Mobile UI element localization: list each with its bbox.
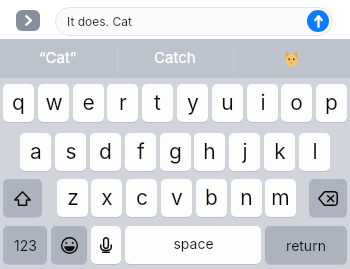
button[interactable]: r — [107, 84, 138, 122]
button[interactable]: It does. Cat — [55, 7, 333, 36]
staticText: p — [325, 90, 338, 115]
button[interactable]: p — [316, 84, 347, 122]
staticText: i — [260, 90, 266, 115]
button[interactable]: w — [38, 84, 69, 122]
button[interactable]: space — [125, 226, 261, 264]
button[interactable]: Shift — [3, 179, 42, 217]
staticText: e — [82, 90, 95, 115]
staticText: h — [203, 139, 216, 164]
staticText: u — [221, 90, 234, 115]
staticText: f — [137, 139, 145, 164]
staticText: k — [274, 139, 286, 164]
staticText: z — [67, 185, 79, 210]
button[interactable]: u — [212, 84, 243, 122]
staticText: d — [99, 139, 112, 164]
button[interactable]: t — [142, 84, 173, 122]
staticText: w — [45, 90, 63, 115]
button[interactable]: b — [196, 179, 227, 217]
button[interactable]: j — [229, 133, 260, 171]
staticText: v — [171, 185, 183, 210]
staticText: 123 — [14, 237, 37, 254]
staticText: l — [312, 139, 318, 164]
staticText: m — [271, 185, 290, 210]
staticText: y — [187, 90, 199, 115]
staticText: c — [136, 185, 148, 210]
staticText: return — [286, 237, 326, 254]
button[interactable]: y — [177, 84, 208, 122]
button[interactable]: m — [265, 179, 296, 217]
button[interactable]: i — [247, 84, 278, 122]
button[interactable]: Cat emoji suggestion — [233, 39, 350, 78]
staticText: r — [119, 90, 127, 115]
staticText: n — [240, 185, 253, 210]
staticText: Catch — [154, 48, 196, 66]
button[interactable]: c — [126, 179, 157, 217]
button[interactable]: e — [73, 84, 104, 122]
button[interactable]: z — [57, 179, 88, 217]
staticText: b — [205, 185, 218, 210]
staticText: a — [30, 139, 42, 164]
staticText: It does. Cat — [67, 14, 132, 29]
staticText: g — [169, 139, 182, 164]
staticText: o — [290, 90, 303, 115]
button[interactable]: s — [55, 133, 86, 171]
button[interactable]: o — [281, 84, 312, 122]
button[interactable]: Dictate — [91, 226, 121, 264]
button[interactable]: Delete — [309, 179, 347, 217]
button[interactable]: x — [91, 179, 122, 217]
button[interactable]: 123 — [3, 226, 47, 264]
button[interactable]: n — [231, 179, 262, 217]
button[interactable]: h — [194, 133, 225, 171]
button[interactable]: Expand toolbar — [16, 10, 40, 31]
button[interactable]: q — [3, 84, 34, 122]
staticText: j — [242, 139, 248, 164]
staticText: x — [101, 185, 113, 210]
button[interactable]: Emoji keyboard — [51, 226, 87, 264]
button[interactable]: a — [20, 133, 51, 171]
button[interactable]: l — [299, 133, 330, 171]
button[interactable]: Catch — [116, 39, 233, 78]
button[interactable]: g — [160, 133, 191, 171]
button[interactable]: v — [161, 179, 192, 217]
staticText: t — [154, 90, 161, 115]
staticText: s — [65, 139, 77, 164]
button[interactable]: Send — [307, 10, 329, 32]
button[interactable]: “Cat” — [0, 39, 116, 78]
button[interactable]: return — [265, 226, 347, 264]
staticText: “Cat” — [39, 48, 77, 66]
button[interactable]: k — [264, 133, 295, 171]
button[interactable]: d — [90, 133, 121, 171]
staticText: q — [12, 90, 25, 115]
staticText: space — [173, 235, 214, 252]
button[interactable]: f — [125, 133, 156, 171]
